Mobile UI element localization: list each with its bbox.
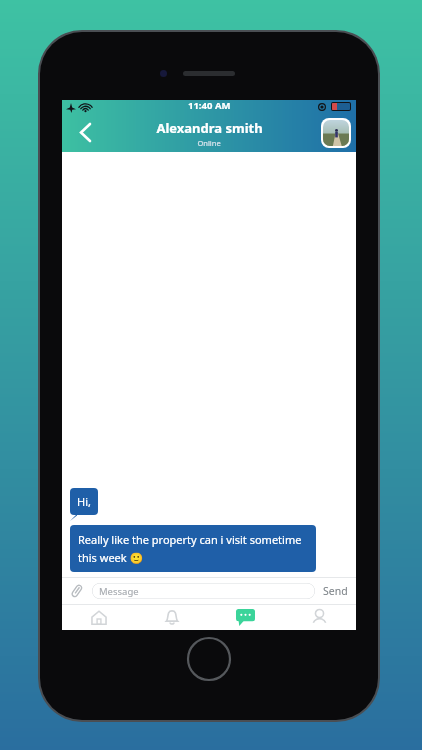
staticText: Send (323, 584, 348, 598)
staticText: 11:40 AM (188, 99, 231, 112)
button[interactable]: Back (72, 119, 98, 145)
button[interactable]: Attach (68, 582, 86, 600)
staticText: Really like the property can i visit som… (78, 532, 308, 565)
button[interactable]: Notifications (135, 604, 208, 630)
button[interactable]: Profile (282, 604, 356, 630)
button[interactable]: Message (92, 583, 315, 599)
button[interactable]: Hi, (77, 494, 91, 509)
button[interactable]: Home (62, 604, 135, 630)
staticText: Online (197, 138, 221, 148)
staticText: Alexandra smith (156, 119, 263, 137)
button[interactable]: Really like the property can i visit som… (78, 532, 308, 565)
staticText: Hi, (77, 494, 91, 509)
button[interactable]: Messages (208, 604, 282, 630)
button[interactable]: Profile photo (323, 120, 349, 146)
button[interactable]: Send (321, 584, 350, 598)
staticText: Message (99, 585, 139, 598)
